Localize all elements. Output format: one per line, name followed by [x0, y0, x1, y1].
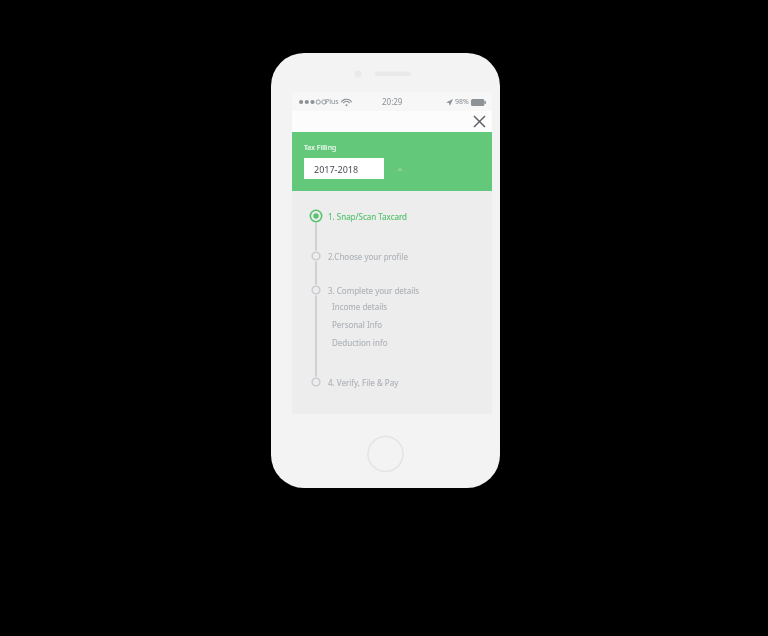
button[interactable]: Close: [470, 112, 489, 131]
staticText: 98%: [455, 97, 469, 107]
staticText: 2017-2018: [314, 163, 359, 175]
button[interactable]: 4. Verify, File & Pay: [292, 374, 492, 390]
button[interactable]: 2.Choose your profile: [292, 248, 492, 264]
staticText: Plus: [325, 97, 339, 107]
staticText: Deduction info: [332, 337, 388, 348]
button[interactable]: Income details: [332, 301, 388, 312]
staticText: 3. Complete your details: [328, 285, 420, 296]
button[interactable]: Select tax year: [393, 162, 407, 176]
button[interactable]: 2017-2018: [304, 158, 384, 179]
staticText: 2.Choose your profile: [328, 251, 408, 262]
staticText: Tax Filling: [304, 143, 337, 153]
button[interactable]: 1. Snap/Scan Taxcard: [292, 208, 492, 224]
staticText: Income details: [332, 301, 388, 312]
staticText: 1. Snap/Scan Taxcard: [328, 211, 408, 222]
staticText: 4. Verify, File & Pay: [328, 377, 399, 388]
staticText: Personal Info: [332, 319, 383, 330]
button[interactable]: Deduction info: [332, 337, 388, 348]
staticText: 20:29: [382, 96, 403, 107]
button[interactable]: Personal Info: [332, 319, 383, 330]
button[interactable]: 3. Complete your details: [292, 282, 492, 298]
